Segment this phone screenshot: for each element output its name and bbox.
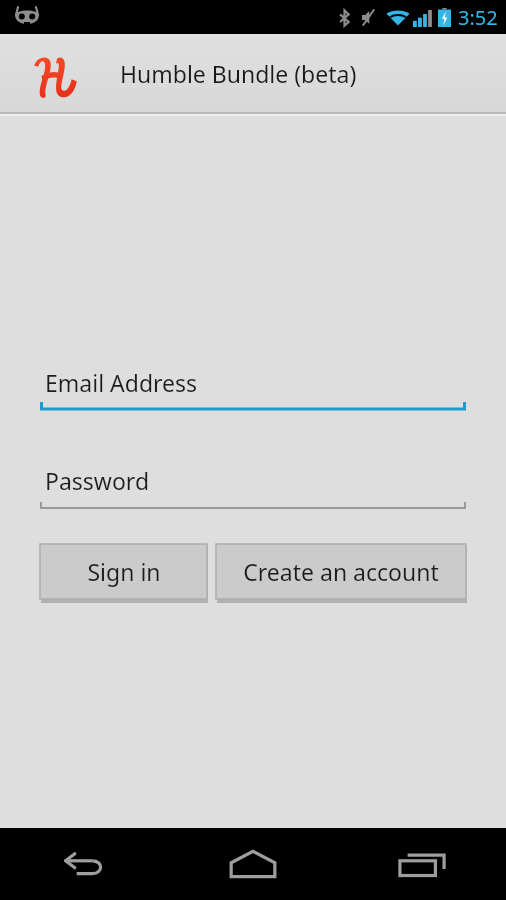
staticText: Email Address [45, 367, 198, 398]
button[interactable]: Recent apps [337, 828, 506, 900]
staticText: Password [45, 465, 150, 496]
button[interactable]: Sign in [40, 544, 207, 601]
button[interactable]: Create an account [216, 544, 466, 601]
button[interactable]: Back [0, 828, 168, 900]
staticText: Sign in [87, 556, 161, 587]
staticText: Humble Bundle (beta) [120, 58, 357, 89]
staticText: Create an account [243, 556, 439, 587]
staticText: 3:52 [458, 4, 498, 31]
button[interactable]: Password [40, 459, 466, 510]
button[interactable]: Email Address [40, 361, 466, 412]
button[interactable]: Home [168, 828, 337, 900]
